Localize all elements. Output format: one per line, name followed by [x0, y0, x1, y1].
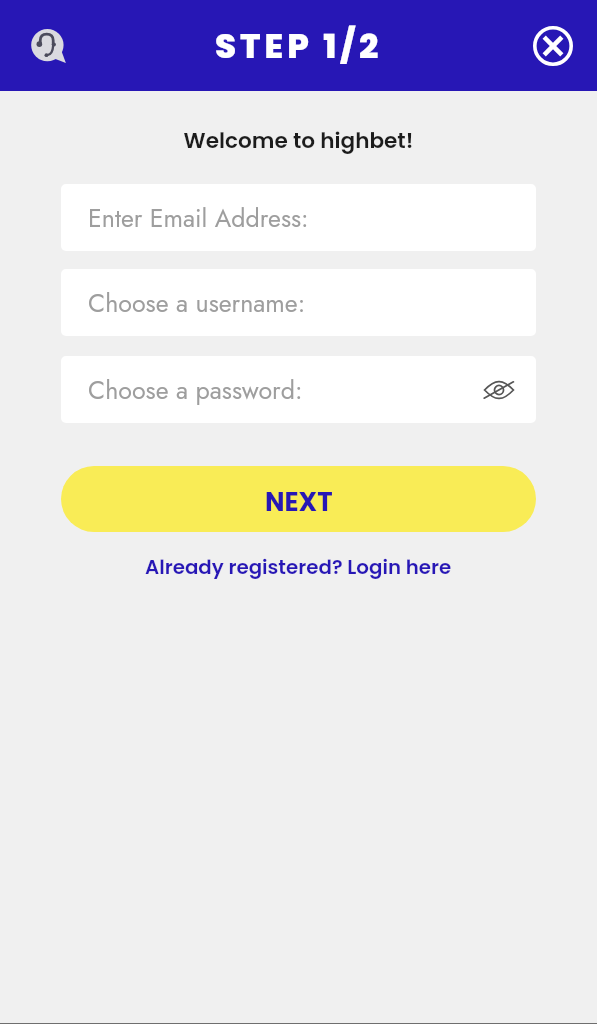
button[interactable]: Choose a username: — [61, 269, 536, 336]
staticText: STEP 1/2 — [215, 22, 383, 70]
staticText: Choose a password: — [88, 372, 303, 408]
staticText: Choose a username: — [88, 285, 306, 321]
button[interactable]: Close — [529, 22, 577, 70]
button[interactable]: Choose a password: — [61, 356, 536, 423]
button[interactable]: Already registered? Login here — [61, 553, 536, 581]
button[interactable]: Support chat — [24, 21, 74, 71]
button[interactable]: Show password — [479, 370, 519, 410]
button[interactable]: NEXT — [61, 466, 536, 532]
staticText: NEXT — [265, 484, 333, 520]
staticText: Welcome to highbet! — [0, 125, 597, 155]
staticText: Enter Email Address: — [88, 200, 309, 236]
staticText: Already registered? Login here — [145, 553, 452, 581]
button[interactable]: Enter Email Address: — [61, 184, 536, 251]
